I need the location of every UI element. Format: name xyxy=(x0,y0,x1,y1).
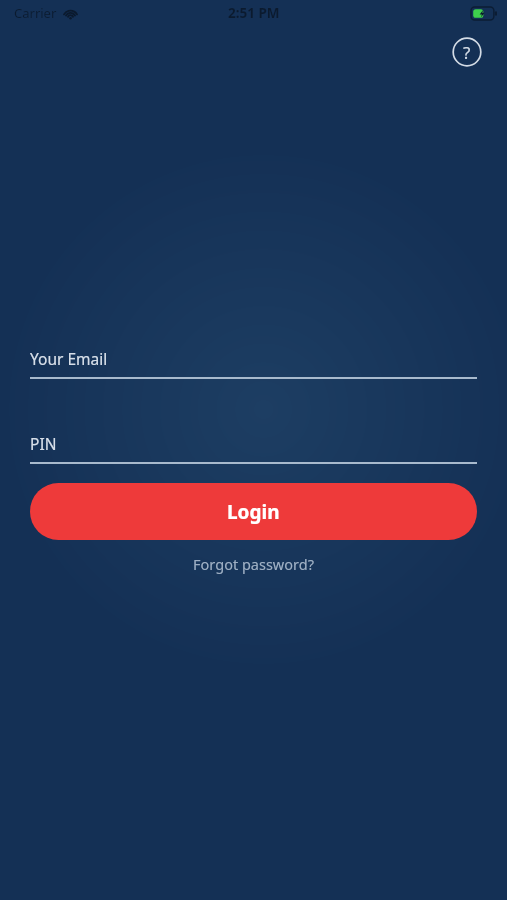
staticText: ? xyxy=(463,41,471,64)
staticText: PIN xyxy=(30,433,57,454)
staticText: Login xyxy=(227,499,280,525)
button[interactable]: Help xyxy=(447,32,487,72)
button[interactable]: Login xyxy=(30,483,477,540)
button[interactable]: Your Email xyxy=(30,348,477,379)
staticText: Carrier xyxy=(14,4,57,22)
button[interactable]: PIN xyxy=(30,433,477,464)
staticText: Forgot password? xyxy=(193,554,314,574)
staticText: Your Email xyxy=(30,348,108,369)
button[interactable]: Forgot password? xyxy=(30,554,477,574)
staticText: 2:51 PM xyxy=(228,4,280,22)
